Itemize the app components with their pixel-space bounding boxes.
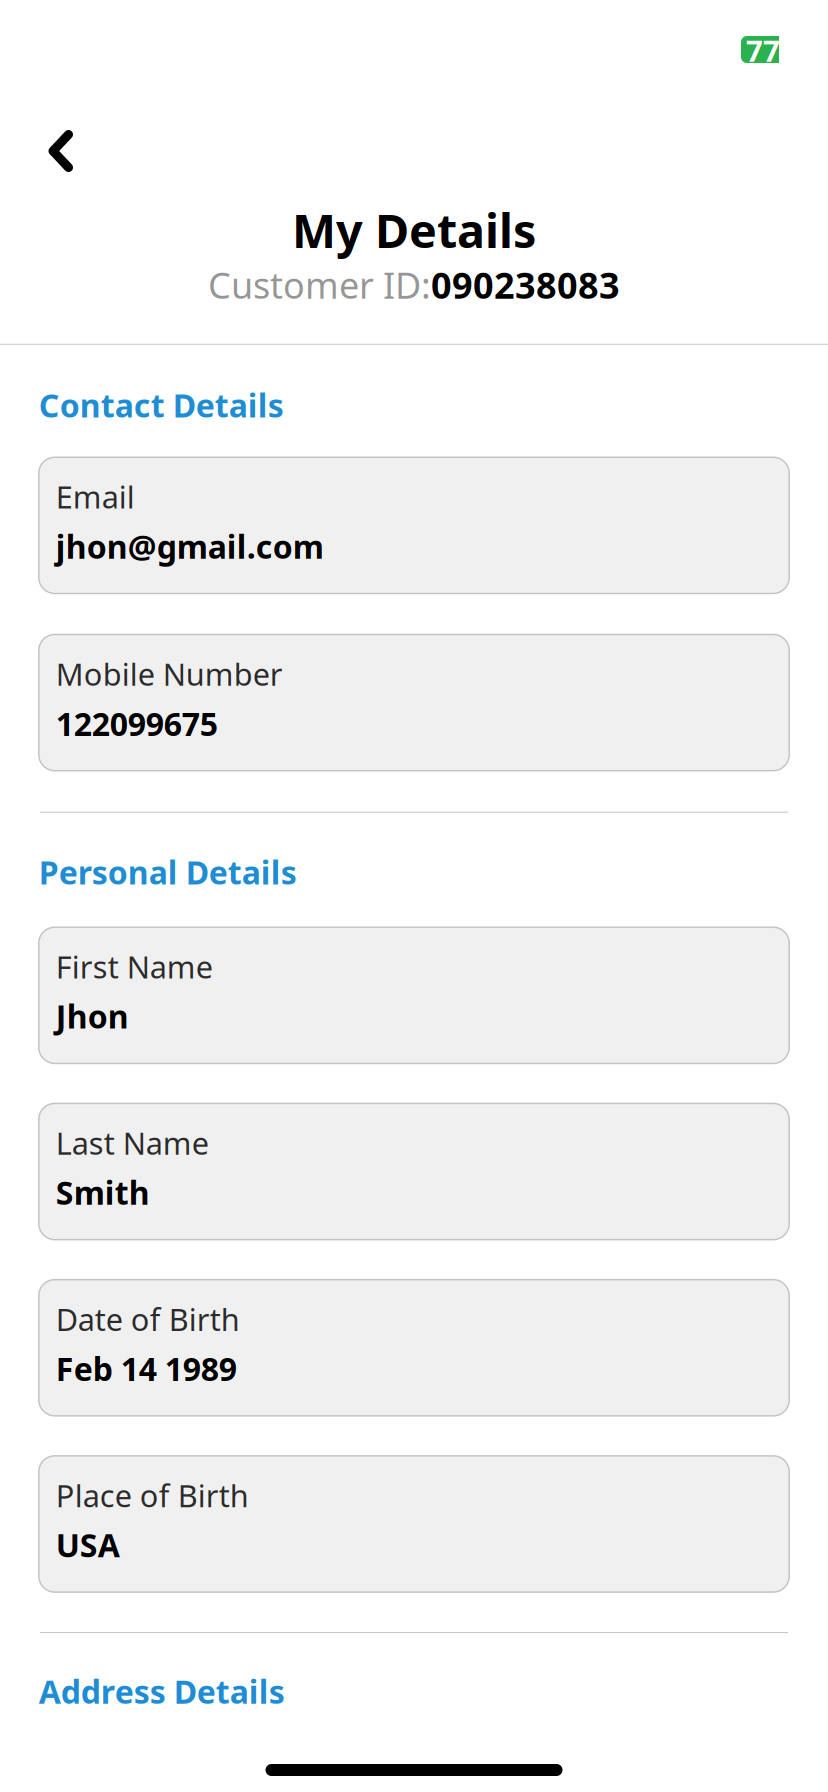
staticText: Mobile Number	[56, 653, 283, 694]
staticText: Place of Birth	[56, 1475, 249, 1516]
staticText: First Name	[56, 946, 213, 987]
staticText: Email	[56, 476, 135, 517]
staticText: Personal Details	[39, 851, 297, 893]
staticText: My Details	[292, 199, 536, 261]
button[interactable]: Last Name	[39, 1103, 789, 1240]
staticText: 090238083	[431, 261, 620, 309]
staticText: Date of Birth	[56, 1299, 240, 1339]
button[interactable]: Email	[39, 457, 789, 593]
staticText: Customer ID:	[208, 261, 431, 309]
button[interactable]: First Name	[39, 927, 789, 1063]
staticText: 77%	[746, 31, 806, 70]
staticText: Last Name	[56, 1122, 209, 1163]
staticText: Jhon	[56, 995, 129, 1037]
button[interactable]: Back	[28, 116, 92, 186]
staticText: jhon@gmail.com	[56, 525, 324, 567]
staticText: 122099675	[56, 702, 218, 745]
staticText: USA	[56, 1524, 120, 1566]
staticText: Contact Details	[39, 384, 284, 426]
button[interactable]: Date of Birth	[39, 1280, 789, 1416]
staticText: Feb 14 1989	[56, 1347, 237, 1390]
staticText: Smith	[56, 1171, 150, 1214]
button[interactable]: Mobile Number	[39, 634, 789, 771]
button[interactable]: Place of Birth	[39, 1456, 789, 1592]
staticText: Address Details	[39, 1670, 285, 1713]
